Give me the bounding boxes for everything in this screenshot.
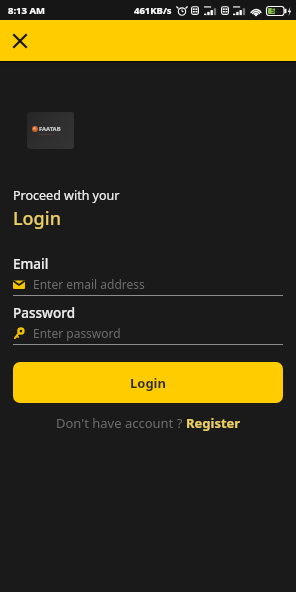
staticText: Login [130,374,166,392]
staticText: Proceed with your [13,187,120,204]
staticText: Email [13,255,49,273]
staticText: Password [13,304,76,322]
staticText: Don't have account ? [56,414,186,432]
staticText: FAATAB [39,125,61,133]
staticText: 8:13 AM [8,4,45,17]
staticText: Login [13,206,61,231]
staticText: 52 [271,6,280,16]
staticText: Enter password [33,325,121,341]
button[interactable]: Login [13,362,283,403]
staticText: Enter email address [33,276,145,292]
button[interactable]: Close [6,27,34,55]
button[interactable]: Register [186,414,241,432]
staticText: 461KB/s [134,4,172,17]
staticText: Register [186,414,241,432]
